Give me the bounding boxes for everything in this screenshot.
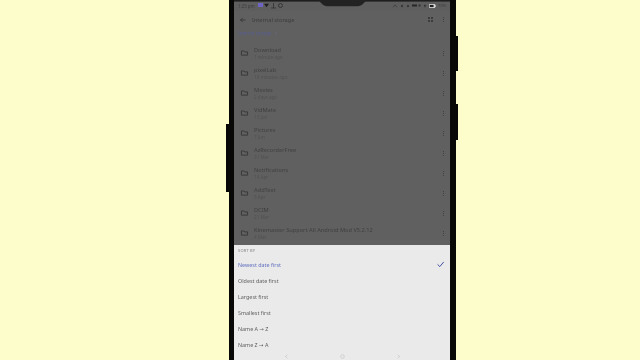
staticText: Name A → Z xyxy=(238,325,269,332)
staticText: 31 Mar xyxy=(254,154,270,160)
staticText: Oldest date first xyxy=(238,277,279,284)
button[interactable]: Item options xyxy=(436,224,450,243)
staticText: AddText xyxy=(254,186,276,194)
button[interactable]: Smallest first xyxy=(234,304,450,320)
staticText: VidMate xyxy=(254,106,277,114)
staticText: 2 days ago xyxy=(254,94,278,100)
staticText: 4 Mar xyxy=(254,234,267,240)
staticText: 14 Apr xyxy=(254,174,269,180)
staticText: 5 Apr xyxy=(254,194,266,200)
staticText: Kinemaster Support All Android Mod V5.2.… xyxy=(254,226,373,234)
button[interactable]: Item options xyxy=(436,184,450,203)
button[interactable]: Download xyxy=(234,43,450,63)
button[interactable]: Item options xyxy=(436,44,450,63)
staticText: Name Z → A xyxy=(238,341,269,348)
button[interactable]: Name Z → A xyxy=(234,336,450,352)
button[interactable]: Item options xyxy=(436,204,450,223)
button[interactable]: Item options xyxy=(436,124,450,143)
button[interactable]: AzRecorderFree xyxy=(234,143,450,163)
staticText: 7 Jun xyxy=(254,134,265,140)
button[interactable]: Internal storage xyxy=(238,30,278,36)
button[interactable]: Name A → Z xyxy=(234,320,450,336)
button[interactable]: Item options xyxy=(436,164,450,183)
staticText: Pictures xyxy=(254,126,276,134)
button[interactable]: Item options xyxy=(436,64,450,83)
staticText: SORT BY xyxy=(238,248,256,253)
button[interactable]: Largest first xyxy=(234,288,450,304)
button[interactable]: Oldest date first xyxy=(234,272,450,288)
staticText: 70% xyxy=(438,3,447,9)
staticText: Newest date first xyxy=(238,261,281,268)
button[interactable]: Newest date first xyxy=(234,256,450,272)
staticText: Internal storage xyxy=(238,30,272,36)
staticText: 10 minutes ago xyxy=(254,74,288,80)
button[interactable]: Kinemaster Support All Android Mod V5.2.… xyxy=(234,223,450,243)
staticText: AzRecorderFree xyxy=(254,146,297,154)
button[interactable]: Item options xyxy=(436,104,450,123)
button[interactable]: Switch view xyxy=(423,11,437,28)
button[interactable]: Back xyxy=(234,11,252,28)
staticText: Internal storage xyxy=(252,16,295,24)
button[interactable]: pixelLab xyxy=(234,63,450,83)
staticText: Download xyxy=(254,46,282,54)
staticText: 1 minute ago xyxy=(254,54,283,60)
button[interactable]: Notifications xyxy=(234,163,450,183)
button[interactable]: More options xyxy=(437,11,450,28)
button[interactable]: Item options xyxy=(436,84,450,103)
staticText: Largest first xyxy=(238,293,269,300)
staticText: Smallest first xyxy=(238,309,271,316)
staticText: Movies xyxy=(254,86,273,94)
staticText: 21 Mar xyxy=(254,214,270,220)
staticText: 1:25 pm xyxy=(238,3,255,9)
staticText: 13 Jun xyxy=(254,114,268,120)
staticText: pixelLab xyxy=(254,66,277,74)
staticText: DCIM xyxy=(254,206,269,214)
staticText: Notifications xyxy=(254,166,289,174)
button[interactable]: Item options xyxy=(436,144,450,163)
